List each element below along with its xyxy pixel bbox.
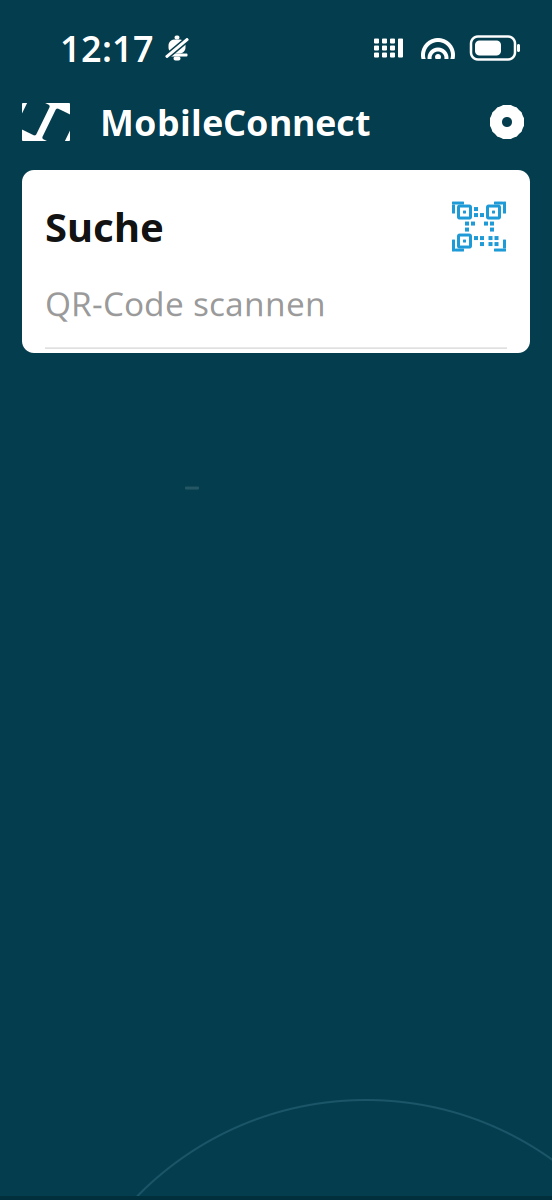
staticText: QR-Code scannen <box>45 281 326 325</box>
staticText: MobileConnect <box>100 98 371 146</box>
button[interactable]: Suche <box>22 170 530 353</box>
button[interactable]: Settings <box>480 95 534 149</box>
staticText: 12:17 <box>60 24 154 72</box>
staticText: Suche <box>45 200 164 253</box>
